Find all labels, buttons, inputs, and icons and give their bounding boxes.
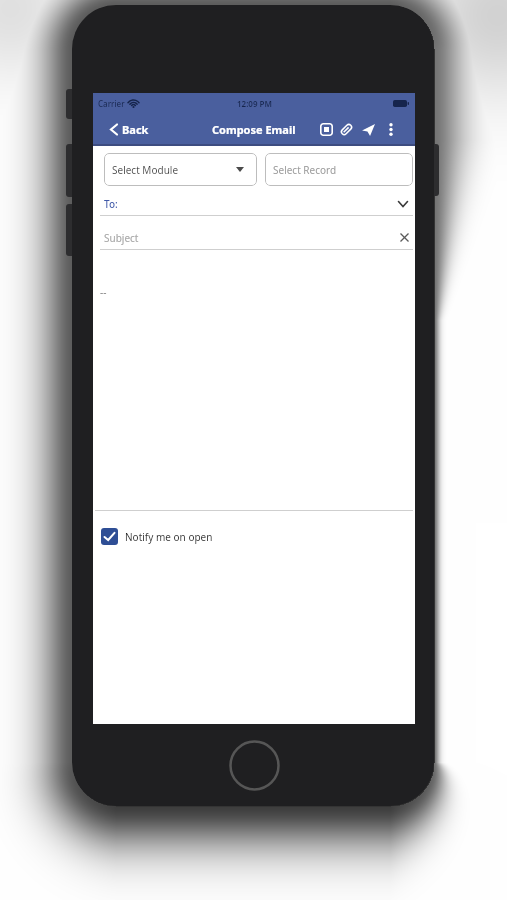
- staticText: --: [100, 285, 107, 299]
- staticText: 12:09 PM: [237, 98, 272, 109]
- staticText: Back: [122, 122, 149, 137]
- staticText: Carrier: [98, 98, 125, 109]
- staticText: Select Module: [112, 163, 179, 177]
- button[interactable]: Notify me on open: [101, 528, 213, 545]
- staticText: To:: [104, 197, 118, 211]
- button[interactable]: Back: [110, 122, 149, 137]
- button[interactable]: [320, 123, 333, 136]
- staticText: Notify me on open: [125, 530, 213, 544]
- staticText: Select Record: [273, 163, 337, 177]
- button[interactable]: [341, 123, 352, 136]
- button[interactable]: [362, 124, 375, 136]
- staticText: Compose Email: [212, 122, 296, 137]
- button[interactable]: To:: [93, 191, 415, 216]
- button[interactable]: Select Record: [265, 153, 413, 186]
- staticText: Subject: [104, 231, 139, 245]
- button[interactable]: Subject: [93, 225, 415, 250]
- button[interactable]: Select Module: [104, 153, 257, 186]
- button[interactable]: [389, 123, 393, 136]
